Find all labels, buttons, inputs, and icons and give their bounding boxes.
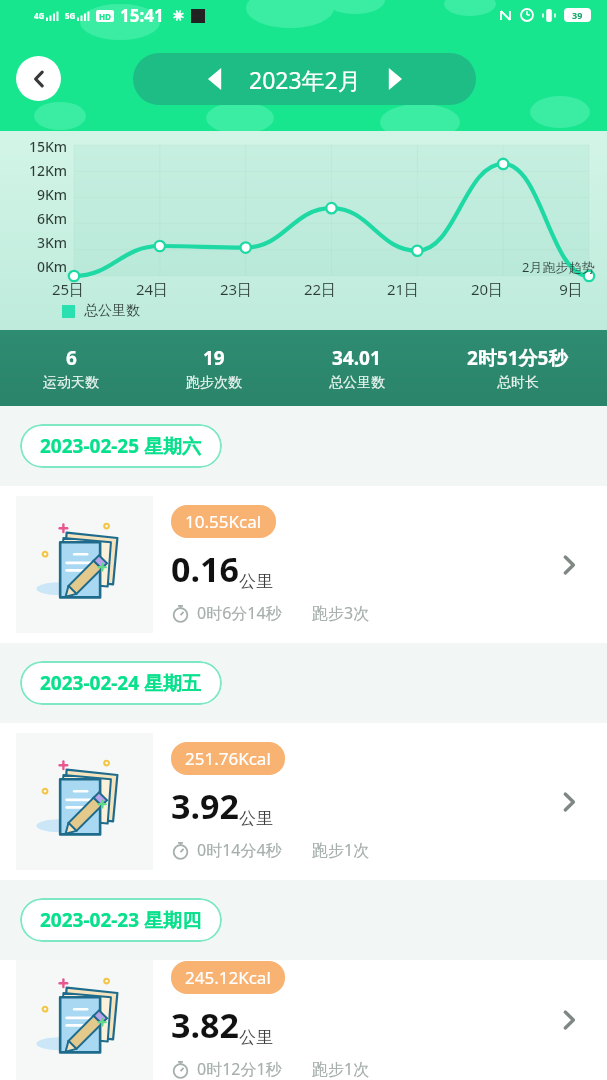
button[interactable]: 2023-02-24 星期五 — [20, 661, 222, 705]
staticText: 23日 — [204, 279, 268, 299]
button[interactable]: 2023-02-23 星期四 — [20, 898, 222, 942]
button[interactable]: Next month — [375, 59, 415, 99]
staticText: 总公里数 — [84, 302, 140, 320]
staticText: 9Km — [37, 185, 68, 204]
staticText: 4G — [34, 10, 45, 21]
staticText: 15:41 — [120, 4, 164, 27]
staticText: 0.16 — [171, 546, 239, 592]
staticText: 总公里数 — [329, 374, 385, 392]
staticText: 公里 — [239, 1027, 273, 1048]
staticText: 运动天数 — [43, 374, 99, 392]
staticText: 0时14分4秒 — [197, 839, 282, 861]
button[interactable]: 2023-02-25 星期六 — [20, 424, 222, 468]
staticText: 跑步1次 — [312, 839, 370, 861]
staticText: 2023-02-23 星期四 — [40, 907, 202, 933]
staticText: 6Km — [37, 209, 68, 228]
button[interactable]: Details — [547, 998, 591, 1042]
staticText: 2023-02-25 星期六 — [40, 433, 202, 459]
button[interactable]: 245.12Kcal — [0, 960, 607, 1080]
staticText: 5G — [65, 10, 76, 21]
staticText: 3Km — [37, 233, 68, 252]
staticText: 跑步1次 — [312, 1058, 370, 1080]
staticText: 2时51分5秒 — [467, 345, 568, 371]
button[interactable]: Previous month — [133, 53, 476, 105]
staticText: 6 — [66, 345, 77, 371]
button[interactable]: 10.55Kcal — [0, 486, 607, 643]
button[interactable]: Details — [547, 780, 591, 824]
staticText: 9日 — [539, 279, 603, 299]
staticText: 总时长 — [497, 374, 539, 392]
staticText: 12Km — [29, 161, 68, 180]
staticText: 跑步次数 — [186, 374, 242, 392]
button[interactable]: Back — [16, 56, 61, 101]
staticText: 24日 — [120, 279, 184, 299]
staticText: 22日 — [288, 279, 352, 299]
staticText: 公里 — [239, 571, 273, 592]
staticText: 3.92 — [171, 783, 239, 829]
staticText: 15Km — [29, 137, 68, 156]
staticText: 21日 — [371, 279, 435, 299]
staticText: 0Km — [37, 257, 68, 276]
staticText: 25日 — [36, 279, 100, 299]
staticText: 公里 — [239, 808, 273, 829]
staticText: 39 — [572, 9, 583, 21]
staticText: 0时6分14秒 — [197, 602, 282, 624]
staticText: 跑步3次 — [312, 602, 370, 624]
staticText: 19 — [203, 345, 225, 371]
staticText: 251.76Kcal — [185, 747, 271, 770]
staticText: 0时12分1秒 — [197, 1058, 282, 1080]
staticText: 20日 — [455, 279, 519, 299]
staticText: 2023年2月 — [249, 64, 361, 95]
staticText: 10.55Kcal — [185, 510, 262, 533]
staticText: HD — [99, 11, 111, 22]
button[interactable]: 251.76Kcal — [0, 723, 607, 880]
button[interactable]: Details — [547, 543, 591, 587]
staticText: 2023-02-24 星期五 — [40, 670, 202, 696]
staticText: 2月跑步趋势 — [522, 258, 595, 276]
staticText: 34.01 — [332, 345, 381, 371]
staticText: 3.82 — [171, 1002, 239, 1048]
button[interactable]: Previous month — [195, 59, 235, 99]
staticText: 245.12Kcal — [185, 966, 271, 989]
